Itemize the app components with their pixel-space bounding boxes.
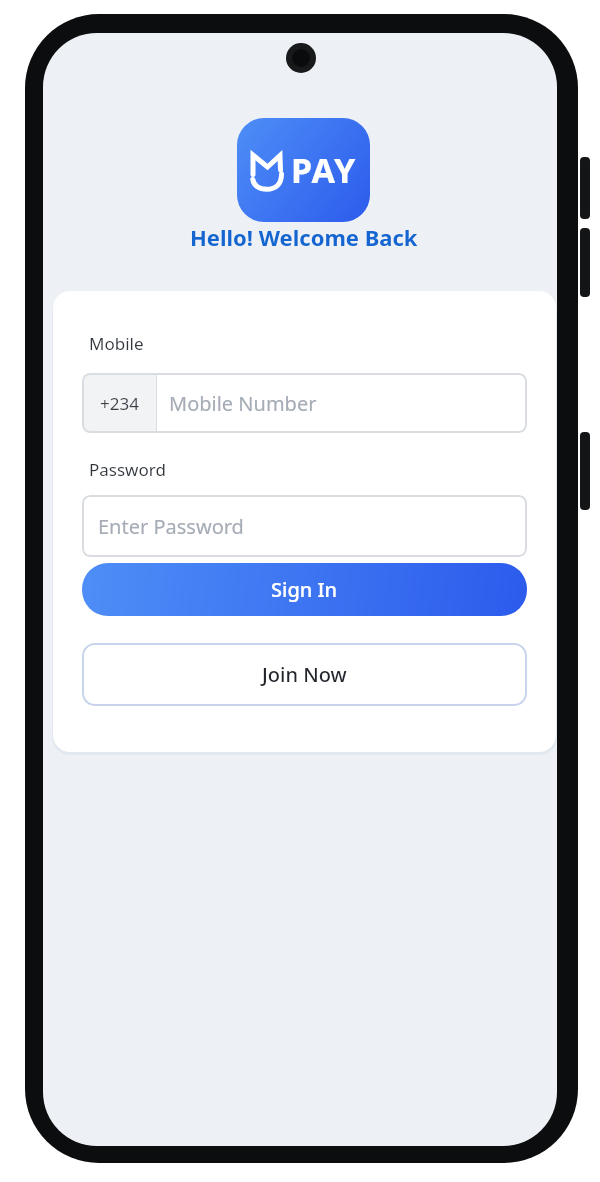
staticText: Hello! Welcome Back [190, 222, 418, 252]
button[interactable]: +234 [82, 373, 527, 433]
staticText: Join Now [262, 661, 347, 688]
staticText: Sign In [271, 576, 338, 603]
staticText: +234 [100, 392, 139, 415]
button[interactable]: Sign In [82, 563, 527, 616]
staticText: Mobile [89, 332, 144, 355]
staticText: Password [89, 458, 166, 481]
button[interactable]: PAY [237, 118, 370, 222]
button[interactable]: Join Now [82, 643, 527, 706]
staticText: Mobile Number [169, 390, 317, 417]
staticText: PAY [291, 147, 357, 193]
staticText: Enter Password [98, 513, 244, 540]
button[interactable]: Enter Password [82, 495, 527, 557]
